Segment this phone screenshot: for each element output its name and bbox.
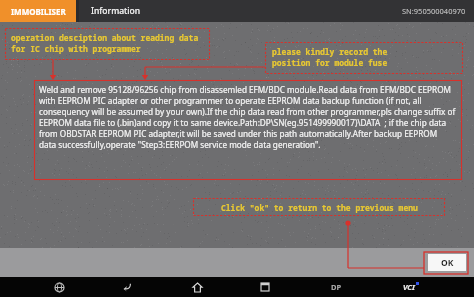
button[interactable]: Information bbox=[79, 0, 153, 22]
button[interactable]: IMMOBILISER bbox=[0, 0, 76, 22]
button[interactable]: Screenshot bbox=[49, 277, 69, 297]
staticText: for IC chip with programmer bbox=[11, 43, 141, 54]
button[interactable]: DP bbox=[324, 277, 348, 297]
staticText: DP bbox=[331, 282, 342, 292]
staticText: Click "ok" to return to the previous men… bbox=[221, 202, 418, 213]
staticText: SN:950500040970 bbox=[402, 6, 466, 16]
button[interactable]: Recent apps bbox=[255, 277, 275, 297]
button[interactable]: Home bbox=[187, 277, 207, 297]
staticText: please kindly record the bbox=[272, 46, 388, 57]
button[interactable]: Back bbox=[118, 277, 138, 297]
staticText: operation desciption about reading data bbox=[11, 32, 199, 43]
button[interactable]: VCI bbox=[397, 277, 425, 297]
button[interactable]: OK bbox=[428, 254, 466, 271]
staticText: IMMOBILISER bbox=[11, 6, 66, 17]
staticText: VCI bbox=[403, 282, 415, 292]
staticText: OK bbox=[441, 257, 454, 269]
staticText: position for module fuse bbox=[272, 57, 388, 68]
staticText: Weld and remove 95128/96256 chip from di… bbox=[39, 84, 456, 150]
staticText: Information bbox=[91, 5, 141, 17]
